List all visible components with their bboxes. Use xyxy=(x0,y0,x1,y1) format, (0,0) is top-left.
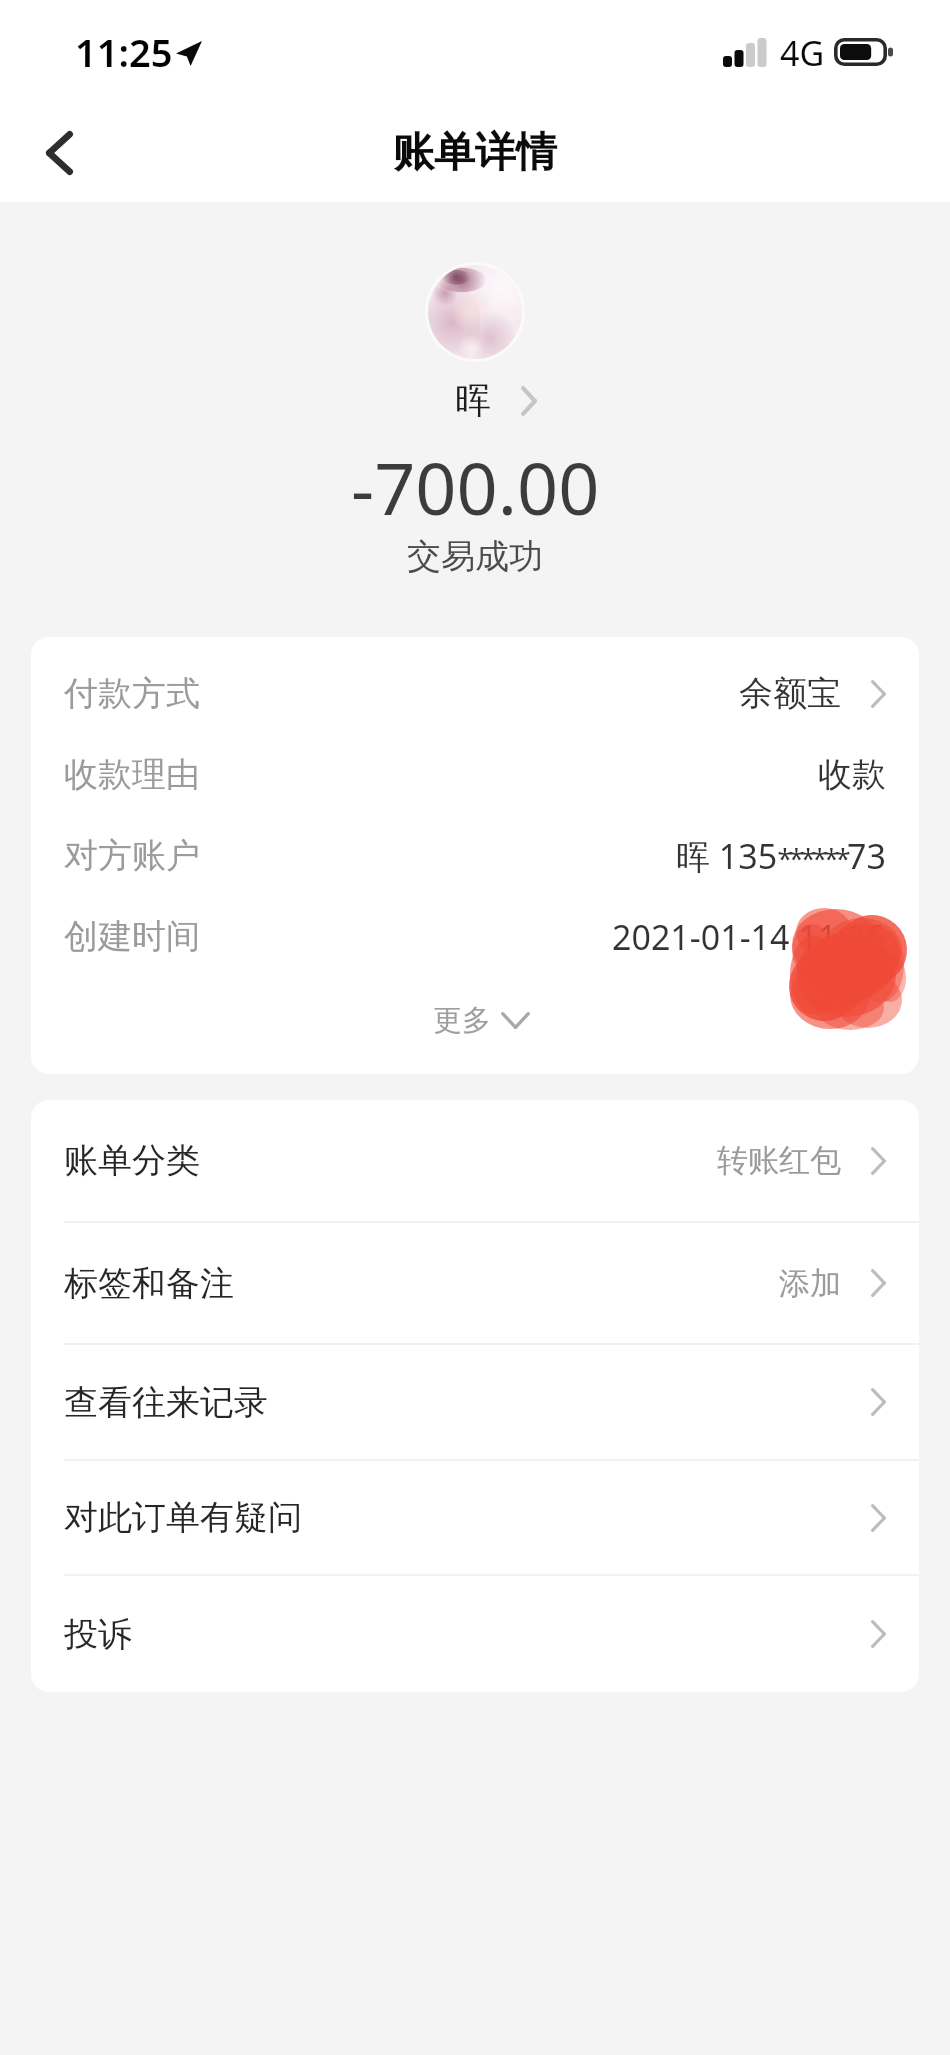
staticText: 更多 xyxy=(433,1002,491,1039)
staticText: 查看往来记录 xyxy=(64,1381,268,1424)
staticText: 标签和备注 xyxy=(64,1262,234,1305)
button[interactable]: 付款方式 xyxy=(31,653,919,734)
staticText: 对此订单有疑问 xyxy=(64,1496,302,1539)
staticText: 11:25 xyxy=(75,26,173,78)
button[interactable]: 账单分类 xyxy=(31,1100,919,1221)
button[interactable]: 投诉 xyxy=(31,1576,919,1692)
staticText: 收款 xyxy=(818,753,886,796)
staticText: 账单详情 xyxy=(393,127,557,179)
staticText: 收款理由 xyxy=(64,753,200,796)
staticText: 晖 xyxy=(455,378,491,423)
staticText: 4G xyxy=(780,30,825,76)
staticText: 晖 135******73 xyxy=(676,833,886,879)
staticText: 2021-01-14 11:25 xyxy=(612,914,886,960)
button[interactable]: 收款理由 xyxy=(31,734,919,815)
staticText: 投诉 xyxy=(64,1613,132,1656)
staticText: 添加 xyxy=(779,1264,841,1303)
staticText: 对方账户 xyxy=(64,834,200,877)
staticText: 交易成功 xyxy=(407,535,543,578)
staticText: 付款方式 xyxy=(64,672,200,715)
button[interactable]: 对方账户 xyxy=(31,815,919,896)
staticText: -700.00 xyxy=(351,438,600,530)
staticText: 余额宝 xyxy=(739,672,841,715)
staticText: 创建时间 xyxy=(64,915,200,958)
button[interactable]: 创建时间 xyxy=(31,896,919,977)
staticText: 账单分类 xyxy=(64,1139,200,1182)
button[interactable]: 标签和备注 xyxy=(31,1223,919,1343)
button[interactable]: Back xyxy=(0,104,118,202)
button[interactable]: 晖 xyxy=(455,378,537,423)
button[interactable]: 查看往来记录 xyxy=(31,1345,919,1459)
button[interactable]: 更多 xyxy=(31,977,919,1074)
button[interactable]: 对此订单有疑问 xyxy=(31,1461,919,1574)
staticText: 转账红包 xyxy=(717,1141,841,1180)
button[interactable]: Avatar xyxy=(425,262,525,362)
